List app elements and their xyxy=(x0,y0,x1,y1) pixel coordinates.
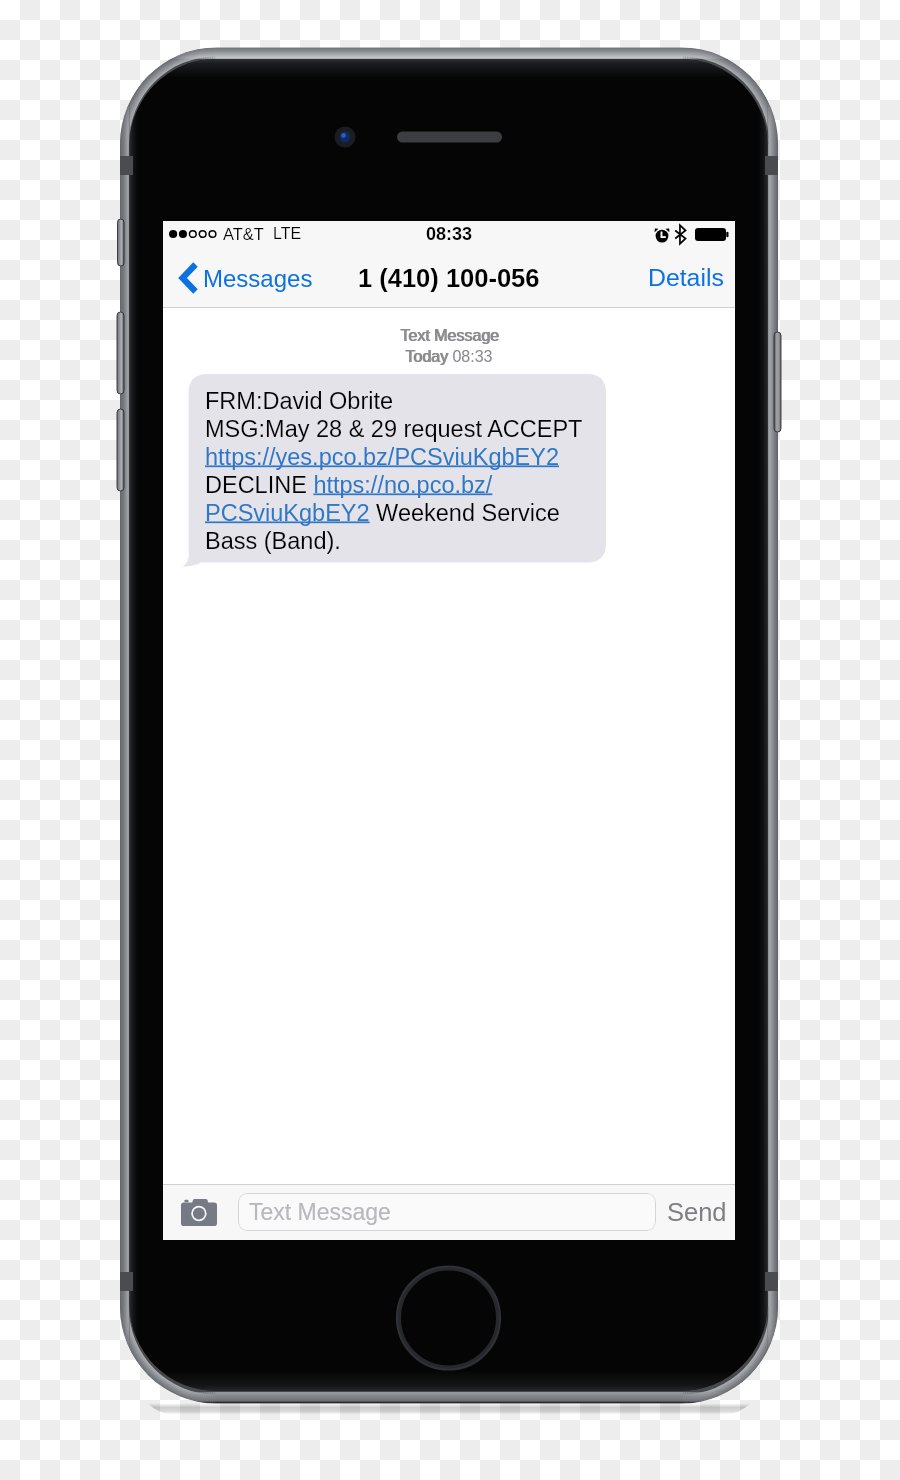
button[interactable]: Messages xyxy=(179,263,313,293)
staticText: Text Message xyxy=(401,327,500,345)
staticText: Today xyxy=(405,348,448,366)
staticText: Text Message xyxy=(249,1199,391,1225)
button[interactable]: Send xyxy=(667,1198,727,1226)
staticText: Today xyxy=(406,348,449,366)
staticText: FRM:David Obrite MSG:May 28 & 29 request… xyxy=(205,388,594,554)
staticText: 08:33 xyxy=(448,348,493,366)
staticText: Details xyxy=(648,264,724,292)
button[interactable]: Text Message xyxy=(238,1193,656,1231)
staticText: Text Message xyxy=(400,327,499,345)
staticText: 08:33 xyxy=(426,224,473,244)
staticText: AT&T xyxy=(223,225,264,243)
staticText: Messages xyxy=(203,265,313,292)
staticText: LTE xyxy=(273,225,302,243)
button[interactable]: FRM:David Obrite MSG:May 28 & 29 request… xyxy=(182,374,606,567)
button[interactable]: Camera xyxy=(181,1197,217,1227)
staticText: 1 (410) 100-056 xyxy=(358,264,540,292)
staticText: Send xyxy=(667,1198,727,1226)
button[interactable]: Details xyxy=(648,264,724,292)
